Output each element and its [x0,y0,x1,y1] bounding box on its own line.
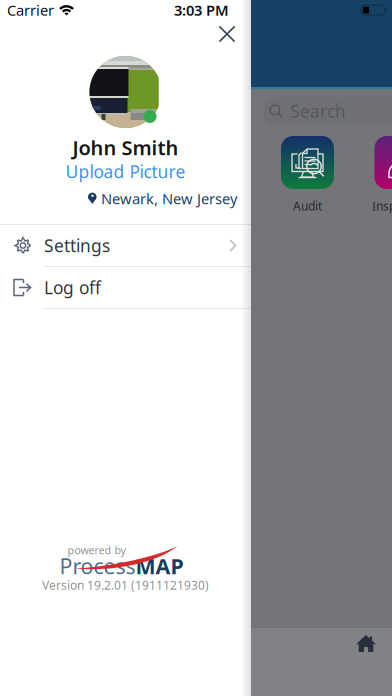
staticText: Audit [293,198,322,214]
staticText: Newark, New Jersey [101,189,237,208]
staticText: Settings [44,234,110,257]
button[interactable]: Settings [0,225,251,267]
button[interactable]: Upload Picture [0,162,251,181]
staticText: Upload Picture [65,160,185,183]
button[interactable]: Home [343,628,389,678]
staticText: Log off [44,276,101,299]
staticText: Inspection [372,198,392,214]
button[interactable]: Audit [281,136,334,189]
button[interactable]: Log off [0,267,251,309]
staticText: Search [290,99,346,122]
button[interactable]: Close [210,17,244,51]
button[interactable]: Inspection [374,136,392,189]
staticText: powered by [67,543,125,557]
staticText: John Smith [72,134,178,161]
staticText: Version 19.2.01 (1911121930) [42,577,209,593]
staticText: 3:03 PM [174,0,229,20]
staticText: Process [59,552,135,580]
staticText: MAP [135,552,183,580]
staticText: Carrier [7,0,54,20]
